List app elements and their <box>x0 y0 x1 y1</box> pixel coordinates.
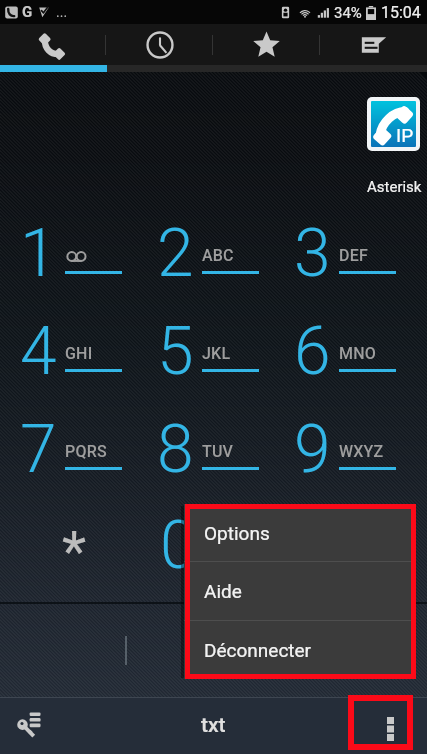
staticText: MNO <box>339 344 376 363</box>
button[interactable]: Déconnecter <box>184 621 412 679</box>
staticText: 2 <box>157 215 194 292</box>
button[interactable]: Dialer <box>0 24 106 65</box>
staticText: 9 <box>294 411 331 488</box>
staticText: Déconnecter <box>204 639 312 661</box>
staticText: 1 <box>20 215 57 292</box>
staticText: DEF <box>339 246 368 265</box>
staticText: 3 <box>294 215 331 292</box>
button[interactable]: More options <box>354 701 407 744</box>
staticText: 8 <box>157 411 194 488</box>
staticText: 34% <box>334 4 362 22</box>
staticText: 15:04 <box>381 3 421 22</box>
staticText: 6 <box>294 313 331 390</box>
button[interactable]: 2 <box>144 229 281 327</box>
staticText: * <box>62 519 87 585</box>
button[interactable]: Options <box>184 504 412 561</box>
button[interactable]: 1 <box>7 229 144 327</box>
button[interactable]: Account settings <box>3 698 59 754</box>
staticText: GHI <box>65 344 93 363</box>
staticText: PQRS <box>65 442 107 461</box>
staticText: 0 <box>160 507 197 584</box>
button[interactable]: 0 <box>144 523 281 621</box>
staticText: JKL <box>202 344 231 363</box>
staticText: G <box>22 3 33 21</box>
button[interactable]: 8 <box>144 425 281 523</box>
staticText: TUV <box>202 442 234 461</box>
staticText: txt <box>201 713 226 738</box>
staticText: ABC <box>202 246 234 265</box>
button[interactable]: Contacts <box>320 24 427 65</box>
button[interactable]: 6 <box>281 327 418 425</box>
button[interactable]: 5 <box>144 327 281 425</box>
staticText: ... <box>56 4 68 20</box>
staticText: IP <box>396 124 414 146</box>
staticText: Asterisk <box>367 178 422 196</box>
button[interactable]: star <box>7 523 144 621</box>
staticText: Options <box>204 522 270 544</box>
button[interactable]: Call log <box>106 24 213 65</box>
staticText: 5 <box>157 313 194 390</box>
button[interactable]: Asterisk account <box>371 101 416 147</box>
button[interactable]: 7 <box>7 425 144 523</box>
staticText: Aide <box>204 580 242 602</box>
button[interactable]: 4 <box>7 327 144 425</box>
button[interactable]: Favourites <box>213 24 320 65</box>
button[interactable]: Aide <box>184 562 412 620</box>
button[interactable]: 9 <box>281 425 418 523</box>
button[interactable]: 3 <box>281 229 418 327</box>
staticText: 7 <box>20 411 57 488</box>
staticText: 4 <box>20 313 57 390</box>
staticText: WXYZ <box>339 442 384 461</box>
